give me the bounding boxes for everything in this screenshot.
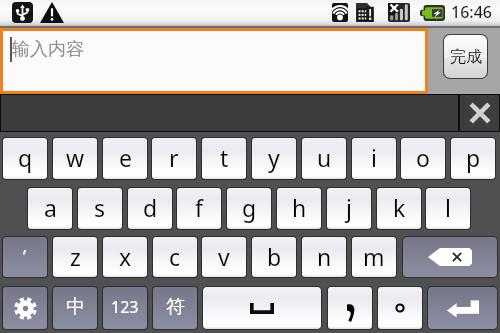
button[interactable]: t (202, 138, 246, 179)
button[interactable]: 中 (53, 287, 97, 329)
staticText: r (169, 142, 179, 173)
button[interactable]: s (78, 188, 122, 229)
button[interactable]: Apostrophe (3, 237, 47, 277)
button[interactable]: k (377, 188, 421, 229)
staticText: i (371, 142, 377, 173)
button[interactable]: 符 (153, 287, 197, 329)
staticText: w (66, 142, 85, 173)
staticText: v (218, 241, 230, 272)
button[interactable]: Backspace (403, 237, 497, 277)
staticText: m (363, 241, 385, 272)
button[interactable]: b (252, 237, 296, 277)
button[interactable]: g (227, 188, 271, 229)
staticText: n (317, 241, 332, 272)
staticText: l (445, 192, 451, 223)
button[interactable]: a (28, 188, 72, 229)
button[interactable]: v (202, 237, 246, 277)
staticText: k (393, 192, 406, 223)
staticText: ’ (23, 244, 27, 269)
button[interactable]: 完成 (444, 35, 487, 78)
button[interactable]: d (128, 188, 172, 229)
staticText: x (119, 241, 132, 272)
staticText: f (195, 192, 203, 223)
staticText: o (416, 142, 430, 173)
staticText: 123 (111, 296, 139, 318)
button[interactable]: h (277, 188, 321, 229)
button[interactable]: 123 (103, 287, 147, 329)
button[interactable]: f (177, 188, 221, 229)
staticText: 符 (166, 295, 185, 319)
staticText: 完成 (450, 47, 482, 67)
staticText: p (466, 142, 481, 173)
staticText: 中 (66, 295, 85, 319)
staticText: t (220, 142, 229, 173)
button[interactable]: Period (378, 287, 422, 329)
staticText: b (267, 241, 282, 272)
staticText: y (268, 142, 280, 173)
staticText: z (70, 241, 81, 272)
button[interactable]: n (302, 237, 346, 277)
button[interactable]: z (53, 237, 97, 277)
button[interactable]: i (352, 138, 396, 179)
button[interactable]: 输入内容 (3, 31, 425, 91)
staticText: 16:46 (451, 1, 492, 23)
staticText: s (94, 192, 106, 223)
button[interactable]: Comma (328, 287, 372, 329)
button[interactable]: p (451, 138, 495, 179)
staticText: d (143, 192, 158, 223)
staticText: g (242, 192, 257, 223)
staticText: h (292, 192, 307, 223)
button[interactable]: q (3, 138, 47, 179)
staticText: q (18, 142, 33, 173)
button[interactable]: o (401, 138, 445, 179)
button[interactable]: Space (203, 287, 321, 329)
button[interactable]: Settings (3, 287, 47, 329)
button[interactable]: c (153, 237, 197, 277)
button[interactable]: l (426, 188, 470, 229)
staticText: u (317, 142, 332, 173)
button[interactable]: u (302, 138, 346, 179)
button[interactable]: Enter (428, 287, 497, 329)
button[interactable]: w (53, 138, 97, 179)
button[interactable]: Close keyboard (460, 95, 499, 131)
button[interactable]: x (103, 237, 147, 277)
button[interactable]: m (352, 237, 396, 277)
staticText: c (169, 241, 181, 272)
staticText: a (44, 192, 57, 223)
staticText: e (119, 142, 132, 173)
staticText: 输入内容 (12, 38, 84, 61)
button[interactable]: y (252, 138, 296, 179)
staticText: j (346, 192, 352, 223)
button[interactable]: e (103, 138, 147, 179)
button[interactable]: j (327, 188, 371, 229)
button[interactable]: r (152, 138, 196, 179)
